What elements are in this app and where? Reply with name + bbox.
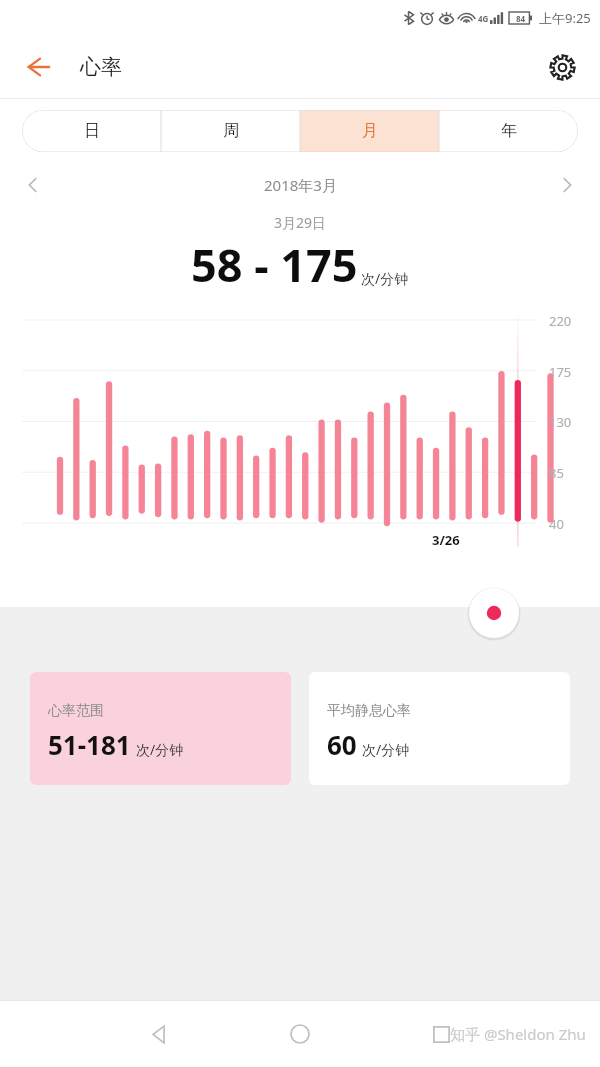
staticText: 175 [549,363,572,381]
staticText: 上午9:25 [539,9,591,27]
staticText: 60 [327,727,357,762]
button[interactable]: 下一月 [546,164,588,206]
staticText: 心率 [80,54,122,80]
button[interactable]: 平均静息心率 [309,672,570,785]
staticText: 85 [549,464,564,482]
button[interactable]: 返回 [131,1006,187,1062]
staticText: 84 [516,13,526,24]
staticText: 次/分钟 [362,740,410,759]
staticText: 3月29日 [274,213,327,232]
staticText: 次/分钟 [136,740,184,759]
button[interactable]: 设置 [538,43,586,91]
staticText: 知乎 @Sheldon Zhu [450,1024,586,1044]
button[interactable]: 主屏幕 [272,1006,328,1062]
staticText: 2018年3月 [264,175,337,195]
staticText: 51-181 [48,727,131,762]
button[interactable]: 上一月 [12,164,54,206]
button[interactable]: 周 [161,110,300,152]
staticText: 年 [501,121,517,141]
staticText: 3/26 [432,531,460,549]
button[interactable]: 心率范围 [30,672,291,785]
staticText: 4G [478,13,489,24]
button[interactable]: 月 [300,110,439,152]
staticText: 130 [549,413,572,431]
staticText: 40 [549,515,564,533]
staticText: 58 - 175 [191,234,358,295]
staticText: 心率范围 [48,702,104,720]
staticText: 次/分钟 [361,269,409,288]
staticText: 220 [549,312,572,330]
staticText: 月 [362,121,378,141]
staticText: 周 [223,121,239,141]
button[interactable]: 年 [439,110,578,152]
button[interactable]: 日 [22,110,161,152]
button[interactable]: 返回 [14,43,62,91]
button[interactable]: 最近任务 [413,1006,469,1062]
staticText: 平均静息心率 [327,702,411,720]
staticText: 日 [84,121,100,141]
